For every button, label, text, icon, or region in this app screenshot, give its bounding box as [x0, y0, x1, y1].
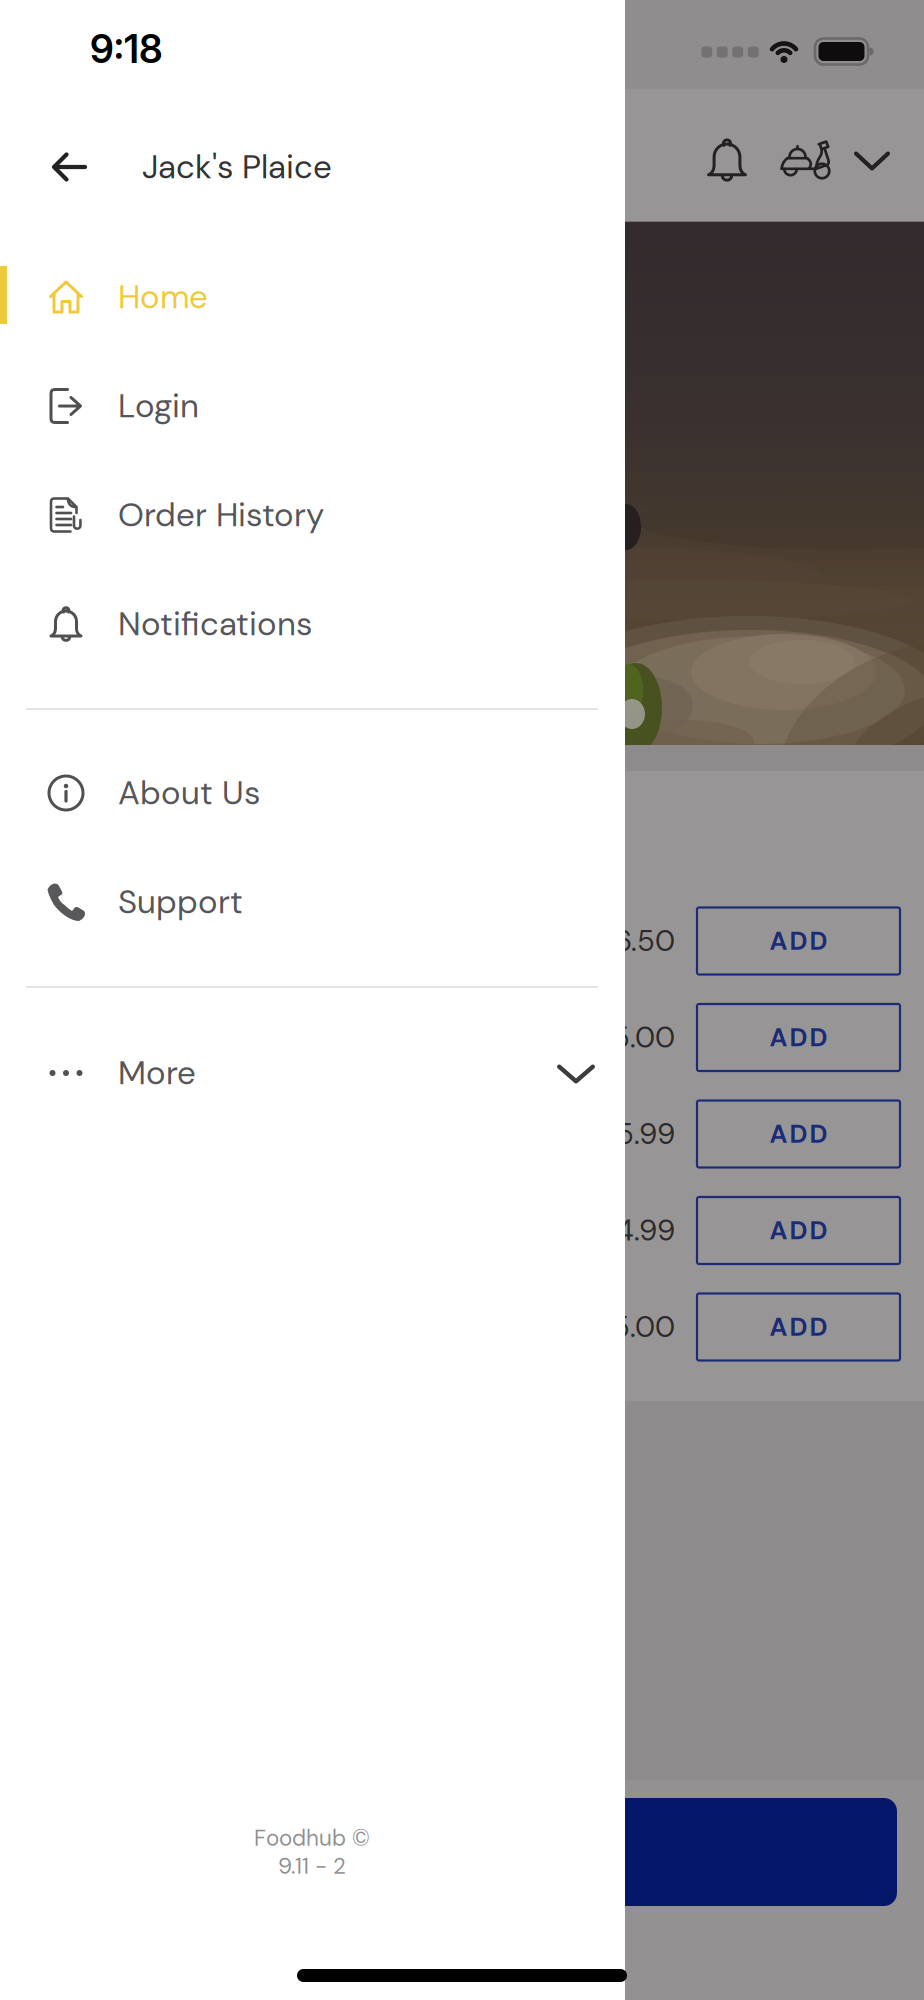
- button[interactable]: ADD: [697, 1004, 900, 1071]
- button[interactable]: About Us: [0, 739, 625, 847]
- staticText: About Us: [118, 771, 260, 815]
- staticText: 9.11 - 2: [278, 1851, 346, 1881]
- staticText: ADD: [769, 1214, 827, 1247]
- staticText: ADD: [769, 1310, 827, 1343]
- button[interactable]: Notifications: [0, 570, 625, 678]
- button[interactable]: View basket: [27, 1798, 897, 1906]
- button[interactable]: Delivery: [780, 140, 832, 182]
- staticText: £15.00: [586, 1019, 675, 1056]
- staticText: £4.99: [599, 1212, 675, 1249]
- button[interactable]: More: [0, 1019, 625, 1127]
- button[interactable]: Back: [41, 141, 97, 193]
- staticText: Home: [118, 275, 208, 319]
- staticText: ADD: [769, 924, 827, 957]
- staticText: ADD: [769, 1117, 827, 1150]
- staticText: £15.00: [586, 1308, 675, 1346]
- staticText: Login: [118, 384, 199, 428]
- staticText: ADD: [769, 1021, 827, 1054]
- staticText: 9:18: [90, 26, 163, 72]
- button[interactable]: ADD: [697, 1100, 900, 1167]
- staticText: Support: [118, 880, 243, 924]
- staticText: £15.99: [590, 1115, 675, 1153]
- button[interactable]: Home: [0, 243, 625, 351]
- button[interactable]: ADD: [697, 1197, 900, 1264]
- button[interactable]: Support: [0, 848, 625, 956]
- button[interactable]: Collapse: [852, 141, 892, 181]
- button[interactable]: ADD: [697, 1293, 900, 1360]
- staticText: Jack's Plaice: [142, 145, 332, 189]
- button[interactable]: ADD: [697, 907, 900, 974]
- staticText: Notifications: [118, 602, 312, 646]
- button[interactable]: Login: [0, 352, 625, 460]
- staticText: £16.50: [588, 922, 675, 960]
- staticText: More: [118, 1051, 196, 1095]
- staticText: Order History: [118, 493, 324, 537]
- staticText: Foodhub ©: [254, 1823, 370, 1853]
- button[interactable]: Order History: [0, 461, 625, 569]
- button[interactable]: Notifications: [703, 136, 751, 184]
